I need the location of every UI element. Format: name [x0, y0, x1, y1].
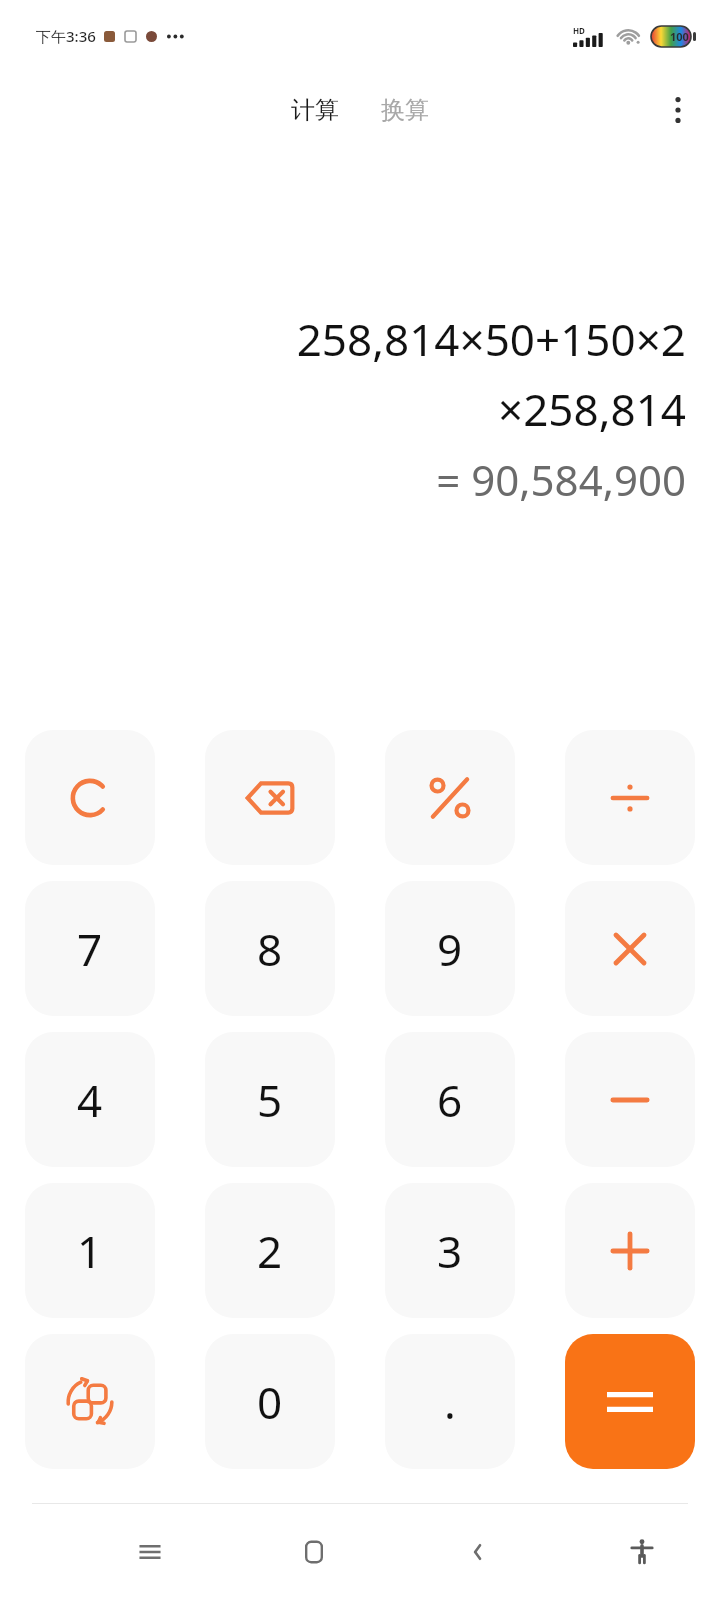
button[interactable]: 1 [25, 1183, 155, 1318]
button[interactable]: Menu [118, 1520, 182, 1584]
button[interactable]: Convert [25, 1334, 155, 1469]
button[interactable]: 8 [205, 881, 335, 1016]
staticText: HD [573, 25, 585, 36]
button[interactable]: Backspace [205, 730, 335, 865]
button[interactable]: Equals [565, 1334, 695, 1469]
staticText: 计算 [291, 95, 339, 125]
button[interactable]: 4 [25, 1032, 155, 1167]
staticText: = 90,584,900 [436, 451, 686, 508]
button[interactable]: 计算 [285, 91, 345, 129]
button[interactable]: . [385, 1334, 515, 1469]
staticText: 1 [77, 1221, 103, 1281]
staticText: 6 [437, 1070, 463, 1130]
button[interactable]: 5 [205, 1032, 335, 1167]
button[interactable]: 3 [385, 1183, 515, 1318]
button[interactable]: Accessibility [610, 1520, 674, 1584]
staticText: 8 [257, 919, 283, 979]
button[interactable]: Clear [25, 730, 155, 865]
staticText: 下午3:36 [36, 26, 96, 46]
button[interactable]: More options [654, 86, 702, 134]
staticText: . [444, 1372, 456, 1432]
staticText: 3 [437, 1221, 463, 1281]
button[interactable]: Plus [565, 1183, 695, 1318]
button[interactable]: 6 [385, 1032, 515, 1167]
button[interactable]: 换算 [375, 91, 435, 129]
staticText: 4 [77, 1070, 103, 1130]
staticText: 换算 [381, 95, 429, 125]
button[interactable]: 7 [25, 881, 155, 1016]
staticText: 9 [437, 919, 463, 979]
button[interactable]: Back [446, 1520, 510, 1584]
staticText: 0 [257, 1372, 283, 1432]
staticText: 258,814×50+150×2 [296, 309, 686, 369]
staticText: 100 [670, 29, 689, 44]
staticText: 5 [257, 1070, 283, 1130]
staticText: ×258,814 [498, 379, 686, 439]
button[interactable]: Divide [565, 730, 695, 865]
button[interactable]: Minus [565, 1032, 695, 1167]
staticText: 7 [77, 919, 103, 979]
button[interactable]: Percent [385, 730, 515, 865]
button[interactable]: 2 [205, 1183, 335, 1318]
button[interactable]: Home [282, 1520, 346, 1584]
button[interactable]: Multiply [565, 881, 695, 1016]
button[interactable]: 0 [205, 1334, 335, 1469]
staticText: 2 [257, 1221, 283, 1281]
button[interactable]: 9 [385, 881, 515, 1016]
